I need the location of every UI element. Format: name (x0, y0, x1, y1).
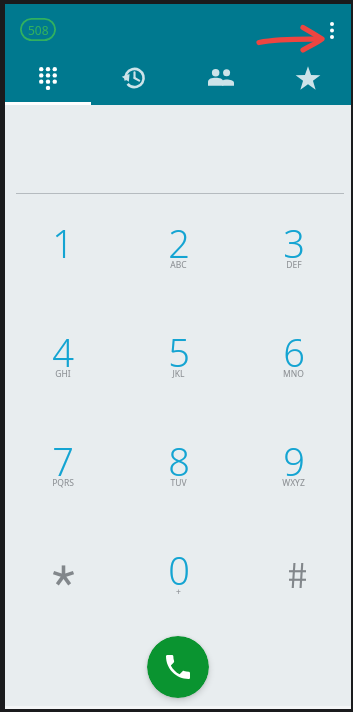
staticText: 5 (168, 326, 190, 378)
button[interactable]: 2 (121, 195, 236, 304)
staticText: 4 (52, 326, 74, 378)
staticText: WXYZ (282, 477, 305, 489)
staticText: PQRS (52, 477, 74, 489)
button[interactable]: Keypad (5, 54, 91, 105)
staticText: 9 (283, 435, 305, 487)
button[interactable]: 7 (5, 413, 121, 522)
button[interactable]: Recents (91, 54, 177, 105)
staticText: JKL (172, 368, 185, 380)
staticText: 8 (168, 435, 190, 487)
button[interactable]: Favorites (264, 54, 351, 105)
staticText: 2 (168, 217, 190, 269)
staticText: 1 (52, 217, 74, 269)
button[interactable]: 9 (236, 413, 351, 522)
staticText: 6 (283, 326, 305, 378)
staticText: 0 (168, 544, 190, 596)
staticText: DEF (286, 259, 302, 271)
button[interactable]: Contacts (177, 54, 264, 105)
button[interactable]: 5 (121, 304, 236, 413)
staticText: TUV (170, 477, 187, 489)
button[interactable]: Call (147, 636, 209, 698)
staticText: 7 (52, 435, 74, 487)
staticText: GHI (55, 368, 71, 380)
button[interactable]: 1 (5, 195, 121, 304)
button[interactable]: More options (313, 11, 351, 49)
staticText: 508 (28, 22, 49, 38)
button[interactable] (236, 522, 351, 631)
staticText: 3 (283, 217, 305, 269)
staticText: ABC (170, 259, 187, 271)
staticText: + (176, 586, 181, 598)
button[interactable]: 508 (20, 18, 56, 41)
staticText: MNO (283, 368, 304, 380)
button[interactable]: 6 (236, 304, 351, 413)
button[interactable]: 3 (236, 195, 351, 304)
button[interactable]: 4 (5, 304, 121, 413)
button[interactable] (5, 522, 121, 631)
button[interactable]: 8 (121, 413, 236, 522)
button[interactable]: 0 (121, 522, 236, 631)
